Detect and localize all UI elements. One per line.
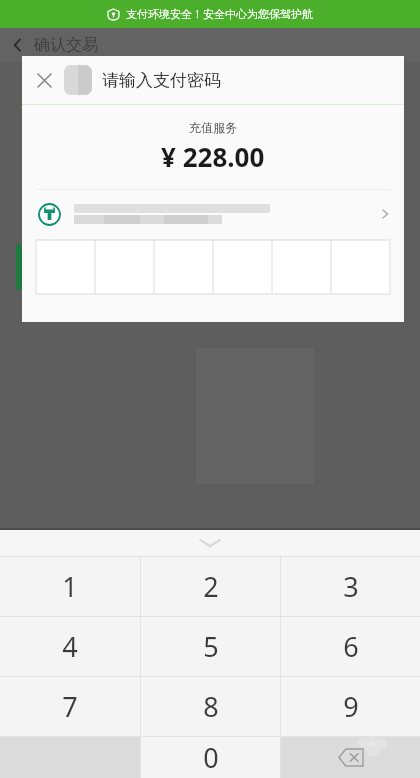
staticText: 7 — [62, 688, 78, 725]
button[interactable]: 5 — [141, 617, 280, 676]
staticText: 1 — [62, 568, 78, 605]
staticText: 3 — [343, 568, 359, 605]
staticText: 2 — [203, 568, 219, 605]
staticText: 6 — [343, 628, 359, 665]
button[interactable]: 3 — [281, 557, 420, 616]
button[interactable]: 1 — [0, 557, 140, 616]
button[interactable]: 6 — [281, 617, 420, 676]
button[interactable]: Delete — [281, 737, 420, 778]
button[interactable]: 7 — [0, 677, 140, 736]
button[interactable]: 4 — [0, 617, 140, 676]
staticText: 4 — [62, 628, 78, 665]
button[interactable]: 0 — [141, 737, 280, 778]
staticText: 请输入支付密码 — [102, 70, 221, 91]
staticText: 确认交易 — [34, 35, 98, 55]
staticText: 9 — [343, 688, 359, 725]
button[interactable]: 8 — [141, 677, 280, 736]
staticText: 0 — [203, 739, 219, 776]
staticText: 5 — [203, 628, 219, 665]
staticText: 充值服务 — [189, 120, 237, 135]
button[interactable]: 9 — [281, 677, 420, 736]
staticText: ¥ 228.00 — [161, 139, 265, 174]
button[interactable] — [22, 190, 404, 238]
button[interactable]: Password input — [36, 240, 390, 294]
button[interactable]: Close — [26, 62, 62, 98]
staticText: 支付环境安全！安全中心为您保驾护航 — [126, 7, 313, 21]
button[interactable]: 2 — [141, 557, 280, 616]
staticText: 8 — [203, 688, 219, 725]
